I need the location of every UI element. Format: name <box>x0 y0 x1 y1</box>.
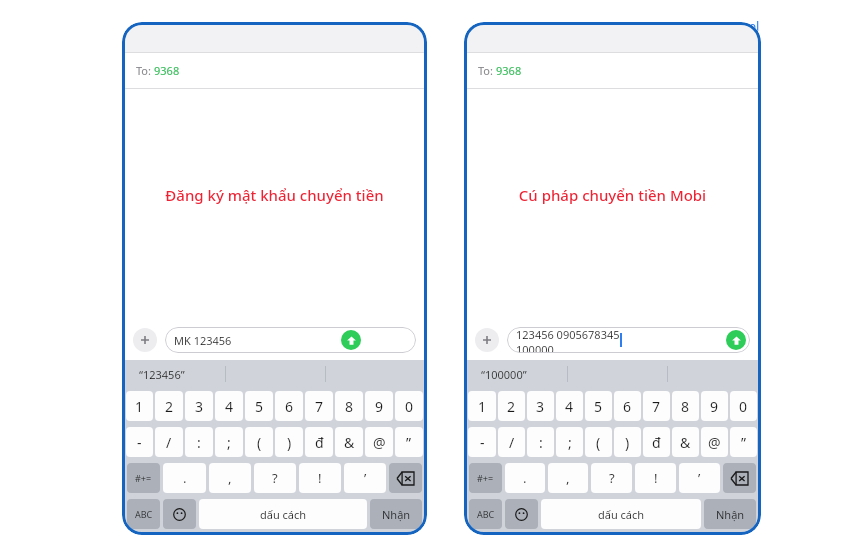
button[interactable]: 3 <box>527 391 554 421</box>
staticText: @ <box>708 433 721 452</box>
button[interactable]: dấu cách <box>541 499 701 529</box>
staticText: 9 <box>710 397 719 416</box>
button[interactable]: Nhận <box>704 499 756 529</box>
button[interactable]: ABC <box>127 499 160 529</box>
button[interactable]: 4 <box>215 391 243 421</box>
button[interactable]: . <box>163 463 206 493</box>
button[interactable]: & <box>672 427 699 457</box>
button[interactable]: @ <box>701 427 728 457</box>
button[interactable]: 4 <box>556 391 583 421</box>
staticText: ABC <box>135 508 153 520</box>
staticText: “100000” <box>481 367 527 382</box>
staticText: “123456” <box>139 367 185 382</box>
button[interactable]: ” <box>395 427 423 457</box>
button[interactable]: 9 <box>365 391 393 421</box>
staticText: & <box>344 433 355 452</box>
button[interactable]: 9 <box>701 391 728 421</box>
button[interactable]: 7 <box>305 391 333 421</box>
button[interactable]: ” <box>730 427 757 457</box>
button[interactable]: Send <box>726 330 746 350</box>
button[interactable]: ! <box>635 463 676 493</box>
staticText: ) <box>287 433 292 452</box>
button[interactable]: : <box>527 427 554 457</box>
button[interactable]: ) <box>614 427 641 457</box>
button[interactable]: ; <box>215 427 243 457</box>
button[interactable]: 123456 0905678345 100000 <box>507 327 750 353</box>
button[interactable]: . <box>505 463 545 493</box>
staticText: ; <box>568 433 572 452</box>
button[interactable]: ? <box>254 463 296 493</box>
button[interactable]: - <box>126 427 153 457</box>
staticText: 1 <box>478 397 487 416</box>
button[interactable]: 6 <box>614 391 641 421</box>
button[interactable]: #+= <box>127 463 160 493</box>
button[interactable]: 0 <box>730 391 757 421</box>
button[interactable]: Nhận <box>370 499 422 529</box>
button[interactable]: , <box>548 463 588 493</box>
button[interactable]: 3 <box>185 391 213 421</box>
button[interactable]: : <box>185 427 213 457</box>
button[interactable]: & <box>335 427 363 457</box>
staticText: 2 <box>507 397 516 416</box>
staticText: 7 <box>652 397 661 416</box>
button[interactable]: MK 123456 <box>165 327 416 353</box>
staticText: Đăng ký mật khẩu chuyển tiền <box>133 185 416 205</box>
button[interactable]: 1 <box>126 391 153 421</box>
staticText: 5 <box>255 397 264 416</box>
button[interactable]: ( <box>245 427 273 457</box>
button[interactable]: @ <box>365 427 393 457</box>
button[interactable]: Send <box>341 330 361 350</box>
button[interactable]: , <box>209 463 251 493</box>
staticText: 9368 <box>496 63 522 78</box>
button[interactable]: - <box>468 427 496 457</box>
button[interactable]: ’ <box>679 463 720 493</box>
staticText: ’ <box>698 469 701 487</box>
button[interactable]: đ <box>305 427 333 457</box>
button[interactable]: 5 <box>245 391 273 421</box>
staticText: 3 <box>536 397 545 416</box>
button[interactable]: #+= <box>469 463 502 493</box>
button[interactable]: 7 <box>643 391 670 421</box>
button[interactable]: 1 <box>468 391 496 421</box>
button[interactable]: 0 <box>395 391 423 421</box>
staticText: 3 <box>195 397 204 416</box>
button[interactable]: 2 <box>498 391 525 421</box>
button[interactable]: ; <box>556 427 583 457</box>
button[interactable]: đ <box>643 427 670 457</box>
staticText: To: <box>136 63 154 78</box>
staticText: 5 <box>594 397 603 416</box>
staticText: - <box>480 433 485 452</box>
button[interactable]: Backspace <box>723 463 756 493</box>
button[interactable]: ) <box>275 427 303 457</box>
button[interactable]: / <box>498 427 525 457</box>
button[interactable]: 8 <box>672 391 699 421</box>
button[interactable]: dấu cách <box>199 499 367 529</box>
button[interactable]: ? <box>591 463 632 493</box>
button[interactable]: ( <box>585 427 612 457</box>
staticText: đ <box>315 433 324 452</box>
staticText: ) <box>625 433 630 452</box>
button[interactable]: Backspace <box>389 463 422 493</box>
staticText: ” <box>406 433 412 452</box>
button[interactable]: ABC <box>469 499 502 529</box>
button[interactable]: 6 <box>275 391 303 421</box>
button[interactable]: ’ <box>344 463 386 493</box>
staticText: đ <box>652 433 661 452</box>
button[interactable]: Add attachment <box>133 328 157 352</box>
button[interactable]: ! <box>299 463 341 493</box>
button[interactable]: 8 <box>335 391 363 421</box>
staticText: & <box>680 433 691 452</box>
button[interactable]: Emoji <box>505 499 538 529</box>
button[interactable]: Add attachment <box>475 328 499 352</box>
button[interactable]: 2 <box>155 391 183 421</box>
button[interactable]: 5 <box>585 391 612 421</box>
staticText: / <box>166 433 172 452</box>
button[interactable]: / <box>155 427 183 457</box>
staticText: 8 <box>681 397 690 416</box>
staticText: 1 <box>135 397 144 416</box>
staticText: 9368 <box>154 63 180 78</box>
staticText: ! <box>318 469 322 487</box>
button[interactable]: Emoji <box>163 499 196 529</box>
staticText: ? <box>609 469 615 487</box>
button[interactable]: Cancel <box>719 17 760 35</box>
